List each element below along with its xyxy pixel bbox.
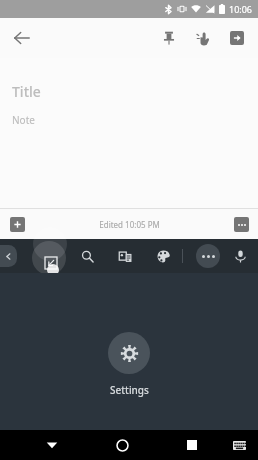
button[interactable]: Collapse (0, 245, 17, 267)
button[interactable]: Reminder (186, 21, 220, 55)
staticText: Title (12, 82, 41, 101)
button[interactable]: More (196, 244, 220, 268)
button[interactable]: Pin (152, 21, 186, 55)
staticText: 10:06 (229, 3, 253, 15)
button[interactable]: Palette (150, 243, 176, 269)
staticText: Edited 10:05 PM (99, 219, 160, 230)
button[interactable]: Title (0, 58, 258, 208)
staticText: Settings (110, 383, 149, 397)
button[interactable]: Switch keyboard (224, 430, 254, 460)
button[interactable]: Add (5, 212, 29, 236)
button[interactable]: Back (37, 430, 67, 460)
button[interactable]: More options (229, 212, 253, 236)
button[interactable]: Voice input (228, 244, 252, 268)
button[interactable]: Back (4, 20, 40, 56)
button[interactable]: Settings (96, 328, 162, 401)
staticText: Note (12, 113, 35, 127)
button[interactable]: Search (74, 243, 100, 269)
button[interactable]: Screen search (41, 253, 61, 273)
button[interactable]: Home (107, 430, 137, 460)
button[interactable]: Lens (112, 243, 138, 269)
button[interactable]: Recents (177, 430, 207, 460)
button[interactable]: Archive (220, 21, 254, 55)
